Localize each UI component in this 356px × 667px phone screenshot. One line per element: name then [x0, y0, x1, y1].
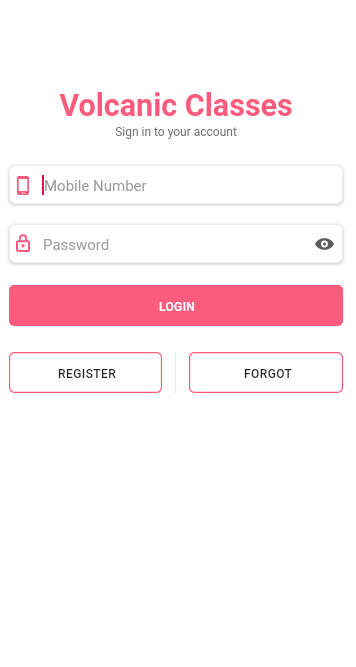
staticText: FORGOT	[244, 367, 293, 381]
staticText: REGISTER	[58, 367, 117, 381]
staticText: Sign in to your account	[115, 125, 237, 139]
staticText: Volcanic Classes	[59, 88, 293, 122]
button[interactable]: FORGOT	[189, 352, 343, 393]
staticText: LOGIN	[159, 300, 196, 314]
staticText: Mobile Number	[44, 177, 147, 195]
button[interactable]: LOGIN	[9, 285, 343, 326]
button[interactable]: Password	[9, 224, 343, 263]
button[interactable]: REGISTER	[9, 352, 162, 393]
staticText: Password	[43, 236, 110, 254]
button[interactable]: Show password	[309, 229, 339, 259]
button[interactable]: Mobile Number	[9, 165, 343, 204]
